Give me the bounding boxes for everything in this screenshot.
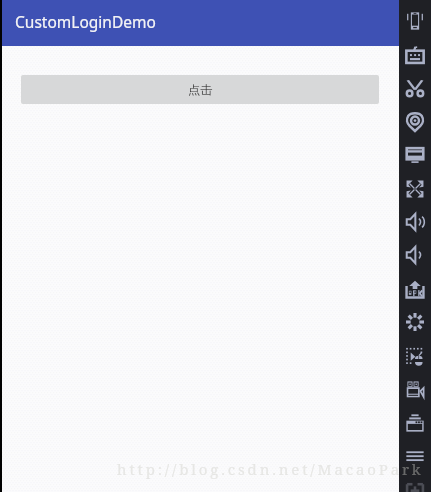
button[interactable]: Display mode <box>399 138 431 171</box>
staticText: http://blog.csdn.net/MacaoPark <box>117 459 424 479</box>
button[interactable]: Take screenshot <box>399 71 431 104</box>
staticText: CustomLoginDemo <box>15 11 156 32</box>
button[interactable]: Install APK <box>399 272 431 305</box>
button[interactable]: Multi touch <box>399 339 431 372</box>
button[interactable]: Location <box>399 105 431 138</box>
button[interactable]: Window controls <box>399 406 431 439</box>
button[interactable]: Rotate device <box>399 4 431 37</box>
staticText: 点击 <box>188 82 212 97</box>
button[interactable]: Volume up <box>399 205 431 238</box>
button[interactable]: More <box>399 473 431 492</box>
button[interactable]: Rotate <box>399 305 431 338</box>
button[interactable]: CustomLoginDemo <box>2 0 399 46</box>
button[interactable]: Fullscreen <box>399 172 431 205</box>
button[interactable]: Extended controls <box>399 439 431 472</box>
button[interactable]: Volume down <box>399 238 431 271</box>
button[interactable]: 点击 <box>21 75 379 104</box>
button[interactable]: Record screen <box>399 372 431 405</box>
button[interactable]: Virtual sensors <box>399 38 431 71</box>
